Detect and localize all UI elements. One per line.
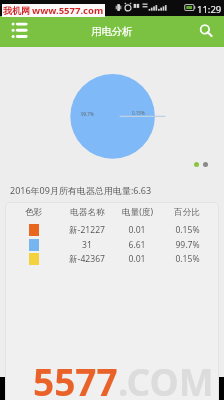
staticText: 新-42367	[69, 253, 105, 265]
staticText: .COM	[118, 356, 214, 400]
staticText: 11:29	[197, 3, 222, 16]
staticText: 用电分析	[91, 25, 133, 38]
staticText: 0.15%	[175, 224, 200, 236]
staticText: 色彩	[25, 207, 43, 218]
staticText: 6.61	[128, 239, 146, 251]
staticText: 新-21227	[69, 224, 105, 236]
staticText: 电器名称	[70, 207, 105, 218]
staticText: 我机网	[3, 5, 30, 16]
staticText: www.5577.com	[32, 4, 104, 17]
staticText: 0.15%	[132, 110, 145, 116]
button[interactable]: Search	[194, 16, 224, 47]
staticText: 电量(度)	[122, 206, 153, 218]
staticText: 0.01	[128, 224, 146, 236]
staticText: 99.7%	[81, 111, 94, 117]
staticText: 0.15%	[175, 253, 200, 265]
staticText: 5577	[33, 356, 118, 400]
staticText: 0.01	[128, 253, 146, 265]
button[interactable]: Menu	[2, 16, 32, 47]
staticText: 百分比	[174, 207, 200, 218]
staticText: 99.7%	[175, 239, 200, 251]
staticText: 31	[82, 239, 92, 251]
staticText: 2016年09月所有电器总用电量:6.63	[10, 184, 152, 196]
